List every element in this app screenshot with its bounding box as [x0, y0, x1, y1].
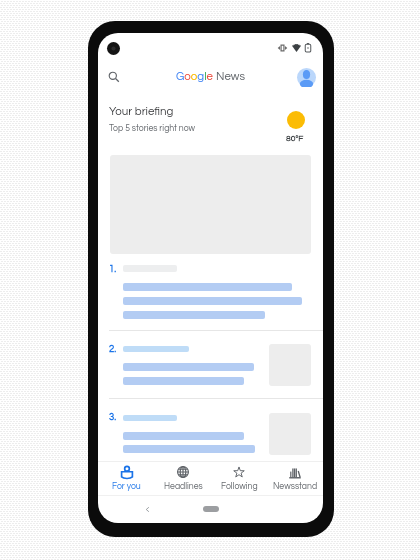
- button[interactable]: Account: [295, 66, 318, 89]
- button[interactable]: Search: [104, 67, 124, 87]
- button[interactable]: Following: [211, 462, 267, 495]
- button[interactable]: Headlines: [155, 462, 211, 495]
- staticText: 3.: [109, 412, 117, 422]
- staticText: 2.: [109, 344, 117, 354]
- staticText: Headlines: [164, 482, 203, 491]
- staticText: 1.: [109, 264, 117, 274]
- staticText: Newsstand: [273, 482, 318, 491]
- staticText: Following: [221, 482, 258, 491]
- staticText: Google: [176, 71, 213, 83]
- staticText: 80°F: [286, 134, 304, 143]
- staticText: Top 5 stories right now: [109, 124, 196, 133]
- staticText: News: [216, 71, 245, 83]
- button[interactable]: Newsstand: [267, 462, 323, 495]
- button[interactable]: For you: [98, 462, 155, 495]
- staticText: Your briefing: [109, 106, 174, 118]
- staticText: For you: [112, 482, 141, 491]
